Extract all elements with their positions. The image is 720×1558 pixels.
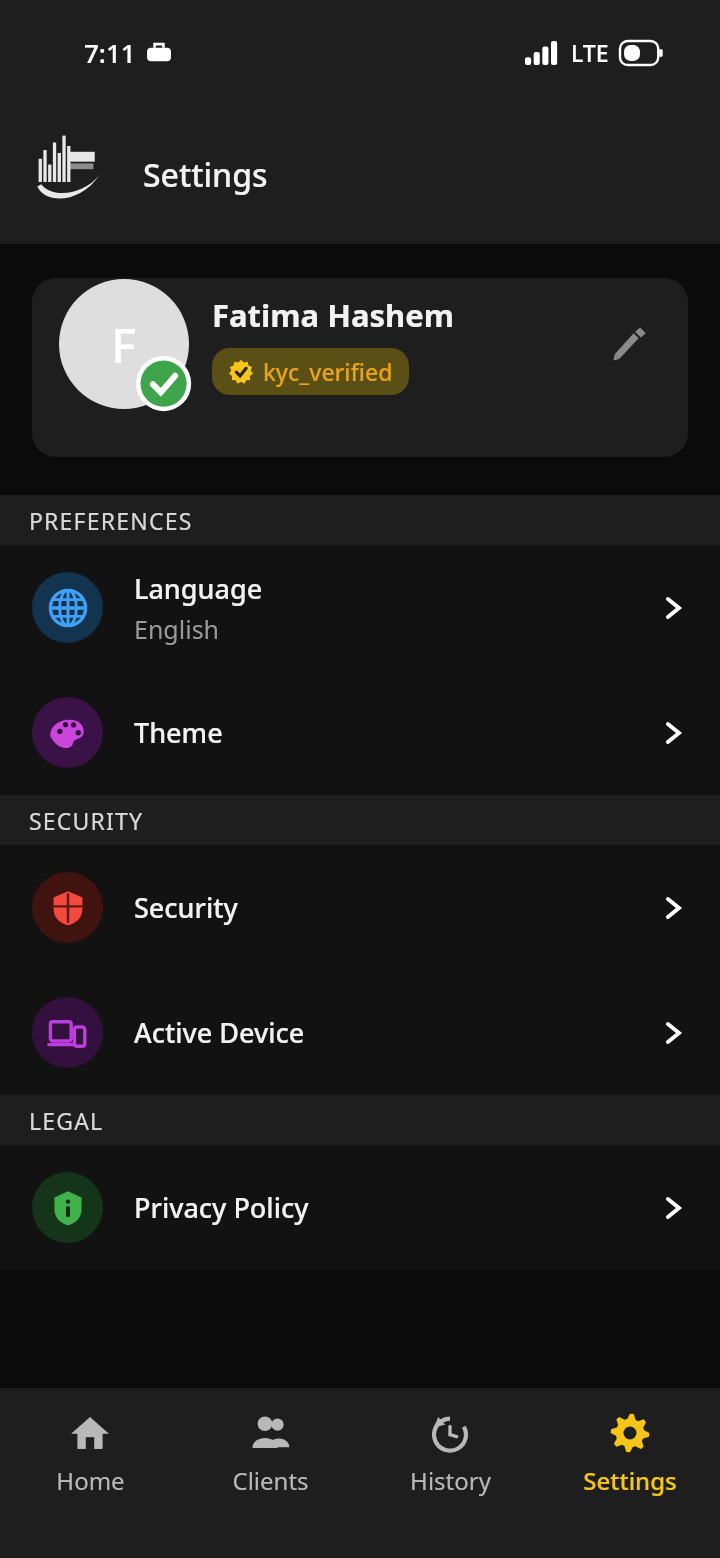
button[interactable]: Clients <box>180 1388 360 1497</box>
staticText: History <box>410 1464 491 1497</box>
button[interactable]: Edit profile <box>598 312 662 376</box>
staticText: F <box>111 312 137 377</box>
staticText: SECURITY <box>29 805 144 836</box>
staticText: Privacy Policy <box>134 1189 309 1226</box>
button[interactable]: Settings <box>540 1388 720 1497</box>
staticText: 7:11 <box>84 35 136 70</box>
staticText: Language <box>134 570 263 607</box>
button[interactable]: Security <box>0 845 720 970</box>
staticText: Fatima Hashem <box>212 294 454 336</box>
staticText: Settings <box>583 1464 677 1497</box>
staticText: LTE <box>571 37 609 68</box>
staticText: Security <box>134 889 238 926</box>
staticText: English <box>134 612 220 646</box>
button[interactable]: kyc_verified <box>212 348 409 395</box>
staticText: Settings <box>143 153 268 197</box>
button[interactable]: History <box>360 1388 540 1497</box>
staticText: Theme <box>134 714 223 751</box>
button[interactable]: Privacy Policy <box>0 1145 720 1270</box>
button[interactable]: F <box>32 278 688 457</box>
staticText: Home <box>56 1464 125 1497</box>
button[interactable]: Active Device <box>0 970 720 1095</box>
staticText: LEGAL <box>29 1105 104 1136</box>
staticText: Clients <box>232 1464 309 1497</box>
button[interactable]: Home <box>0 1388 180 1497</box>
staticText: kyc_verified <box>263 356 393 387</box>
staticText: PREFERENCES <box>29 505 193 536</box>
button[interactable]: Theme <box>0 670 720 795</box>
button[interactable]: Language <box>0 545 720 670</box>
staticText: Active Device <box>134 1014 305 1051</box>
